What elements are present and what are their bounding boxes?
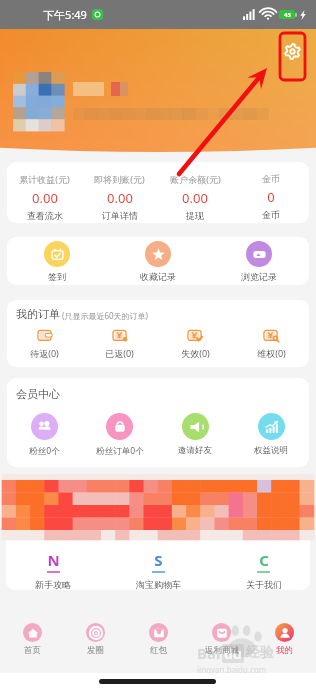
staticText: 经验 [246, 644, 274, 662]
button[interactable]: 发圈 [64, 623, 127, 656]
staticText: 0.00 [32, 189, 58, 207]
button[interactable]: 即将到账(元) [82, 173, 157, 221]
staticText: 淘宝购物车 [136, 579, 181, 590]
staticText: 累计收益(元) [19, 173, 70, 185]
staticText: 我的订单 [16, 307, 60, 321]
button[interactable]: 设置 [282, 41, 303, 62]
staticText: 发圈 [87, 645, 104, 656]
staticText: 待返(0) [30, 347, 59, 359]
staticText: 关于我们 [246, 579, 282, 590]
staticText: 邀请好友 [178, 445, 212, 456]
staticText: 0 [267, 188, 275, 206]
staticText: N [47, 550, 60, 570]
staticText: 粉丝订单0个 [96, 445, 144, 457]
button[interactable]: 已返(0) [82, 329, 157, 359]
staticText: 浏览记录 [241, 271, 277, 282]
button[interactable]: 失效(0) [157, 329, 233, 359]
staticText: 签到 [48, 271, 66, 282]
button[interactable]: 邀请好友 [157, 413, 233, 456]
button[interactable]: 首页 [0, 623, 64, 656]
button[interactable]: 我的 [253, 623, 316, 656]
button[interactable]: 粉丝0个 [7, 413, 82, 457]
staticText: 下午5:49 [43, 7, 87, 22]
button[interactable]: 粉丝订单0个 [82, 413, 157, 457]
staticText: 已返(0) [105, 347, 134, 359]
staticText: 收藏记录 [140, 271, 176, 282]
staticText: 红包 [150, 645, 167, 656]
staticText: 订单详情 [102, 210, 138, 221]
button[interactable]: S [106, 550, 211, 590]
button[interactable]: 待返(0) [7, 329, 82, 359]
staticText: 查看流水 [27, 210, 63, 221]
staticText: C [259, 550, 269, 570]
staticText: 金币 [262, 173, 280, 184]
staticText: (只显示最近60天的订单) [62, 310, 148, 321]
staticText: 权益说明 [254, 445, 288, 456]
button[interactable]: 权益说明 [233, 413, 309, 456]
staticText: 新手攻略 [35, 579, 71, 590]
button[interactable]: 金币 [233, 173, 309, 220]
button[interactable]: 维权(0) [233, 329, 309, 359]
staticText: 0.00 [107, 189, 133, 207]
staticText: 首页 [24, 645, 41, 656]
button[interactable]: C [211, 550, 316, 590]
button[interactable]: 累计收益(元) [7, 173, 82, 221]
staticText: 会员中心 [16, 387, 60, 401]
button[interactable]: 收藏记录 [107, 241, 208, 282]
staticText: 失效(0) [181, 347, 210, 359]
staticText: du [224, 644, 242, 663]
staticText: 我的 [276, 645, 293, 656]
staticText: 返利商城 [205, 645, 239, 656]
button[interactable]: 账户余额(元) [157, 173, 233, 221]
staticText: 粉丝0个 [29, 445, 60, 457]
staticText: 账户余额(元) [170, 173, 221, 185]
staticText: Bai [197, 643, 221, 663]
staticText: 维权(0) [257, 347, 286, 359]
button[interactable]: 返利商城 [190, 623, 253, 656]
button[interactable]: N [0, 550, 106, 590]
staticText: 45 [284, 11, 291, 19]
staticText: 即将到账(元) [94, 173, 145, 185]
button[interactable]: 签到 [7, 241, 107, 282]
staticText: jingyan.baidu.com [197, 664, 267, 675]
button[interactable]: 浏览记录 [208, 241, 309, 282]
button[interactable]: 红包 [127, 623, 190, 656]
staticText: S [154, 550, 163, 570]
staticText: 金币 [262, 209, 280, 220]
staticText: 提现 [186, 210, 204, 221]
staticText: 0.00 [182, 189, 208, 207]
